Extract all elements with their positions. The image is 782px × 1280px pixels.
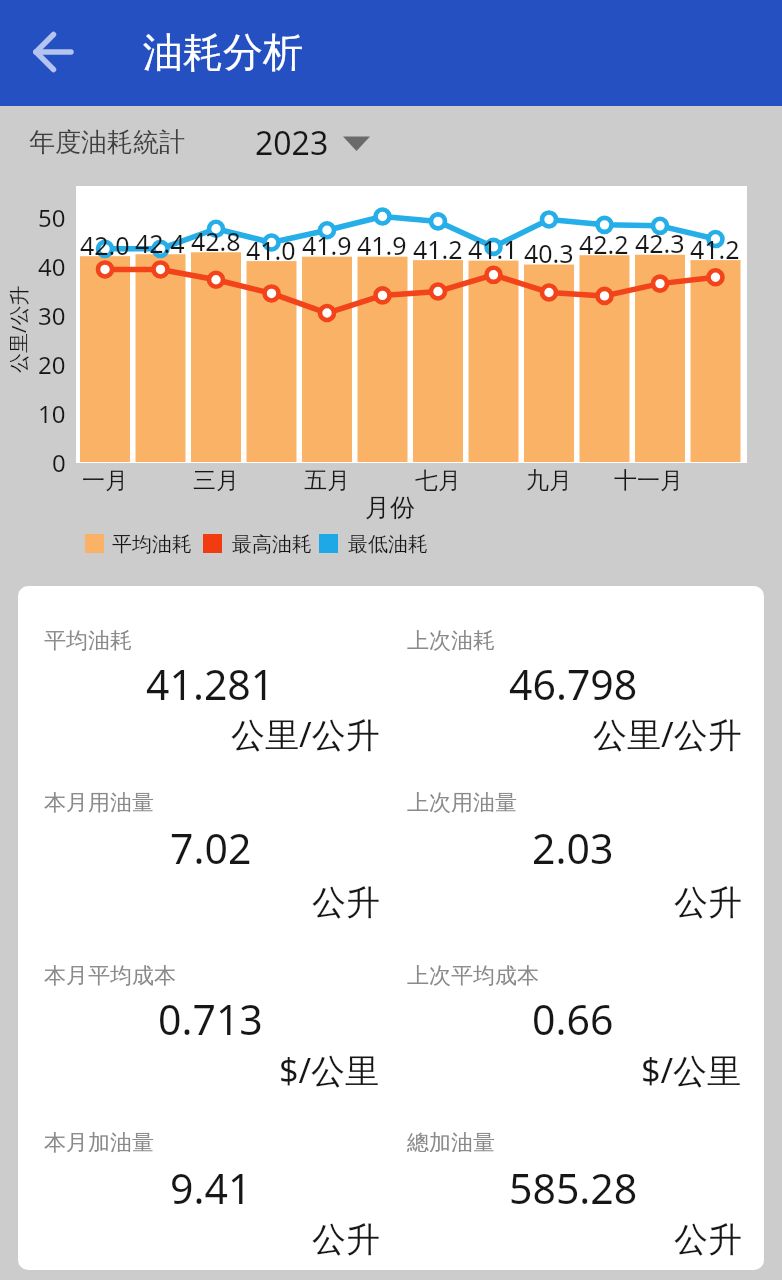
staticText: 公里/公升 — [5, 285, 32, 373]
staticText: 公升 — [674, 1218, 742, 1261]
staticText: 最低油耗 — [348, 532, 428, 557]
staticText: 公升 — [312, 881, 380, 924]
staticText: 公里/公升 — [231, 711, 380, 757]
staticText: 41.1 — [468, 232, 518, 266]
staticText: 42.8 — [191, 224, 241, 258]
staticText: 九月 — [526, 466, 572, 495]
staticText: 0.66 — [532, 991, 614, 1047]
staticText: 20 — [38, 348, 66, 381]
staticText: 41.9 — [302, 228, 352, 262]
button[interactable]: 2023 — [250, 117, 380, 169]
staticText: 本月平均成本 — [44, 962, 176, 990]
staticText: $/公里 — [279, 1047, 380, 1093]
staticText: 0 — [52, 446, 66, 479]
staticText: 41.0 — [246, 233, 296, 267]
staticText: 最高油耗 — [232, 532, 312, 557]
staticText: 公升 — [674, 881, 742, 924]
staticText: 本月用油量 — [44, 789, 154, 817]
staticText: 年度油耗統計 — [29, 126, 185, 159]
staticText: 42.2 — [579, 227, 629, 261]
staticText: 42.3 — [635, 226, 685, 260]
staticText: 42.0 — [80, 228, 130, 262]
staticText: 公升 — [312, 1218, 380, 1261]
staticText: 40.3 — [524, 236, 574, 270]
staticText: 41.2 — [413, 232, 463, 266]
staticText: 三月 — [193, 466, 239, 495]
staticText: 平均油耗 — [44, 627, 132, 655]
staticText: 一月 — [82, 466, 128, 495]
staticText: 9.41 — [170, 1160, 252, 1216]
staticText: 42.4 — [135, 226, 185, 260]
button[interactable] — [20, 17, 90, 87]
staticText: 平均油耗 — [112, 532, 192, 557]
staticText: $/公里 — [641, 1047, 742, 1093]
staticText: 2.03 — [532, 820, 614, 876]
staticText: 0.713 — [158, 991, 263, 1047]
staticText: 十一月 — [614, 466, 683, 495]
staticText: 30 — [38, 299, 66, 332]
staticText: 41.2 — [690, 232, 740, 266]
staticText: 總加油量 — [407, 1129, 495, 1157]
staticText: 40 — [38, 250, 66, 283]
staticText: 50 — [38, 201, 66, 234]
staticText: 585.28 — [509, 1160, 638, 1216]
staticText: 月份 — [365, 492, 415, 523]
staticText: 本月加油量 — [44, 1129, 154, 1157]
staticText: 46.798 — [509, 656, 638, 712]
staticText: 41.9 — [357, 228, 407, 262]
staticText: 41.281 — [146, 656, 275, 712]
staticText: 公里/公升 — [593, 711, 742, 757]
staticText: 油耗分析 — [143, 27, 303, 77]
staticText: 上次油耗 — [407, 627, 495, 655]
staticText: 七月 — [415, 466, 461, 495]
staticText: 2023 — [255, 121, 329, 165]
staticText: 10 — [38, 397, 66, 430]
staticText: 上次用油量 — [407, 789, 517, 817]
staticText: 上次平均成本 — [407, 962, 539, 990]
staticText: 7.02 — [170, 820, 252, 876]
staticText: 五月 — [304, 466, 350, 495]
